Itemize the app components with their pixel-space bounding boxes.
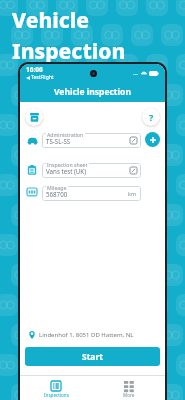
staticText: km xyxy=(128,190,137,197)
staticText: TS-SL-SS xyxy=(46,137,130,145)
button[interactable]: Add xyxy=(145,132,160,147)
button[interactable]: Vans test (UK) xyxy=(42,161,141,178)
staticText: Lindenhof 1, 8051 DD Hattem, NL xyxy=(39,331,134,339)
staticText: Vans test (UK) xyxy=(46,167,130,175)
staticText: TestFlight xyxy=(31,74,54,81)
button[interactable]: Archive xyxy=(25,108,43,126)
button[interactable]: Start xyxy=(25,347,160,366)
staticText: More xyxy=(123,392,135,398)
button[interactable]: 568700 xyxy=(42,184,141,201)
button[interactable]: More xyxy=(92,376,165,400)
staticText: 16:06 xyxy=(26,65,43,74)
button[interactable]: Help xyxy=(142,108,160,126)
staticText: ? xyxy=(149,111,154,123)
staticText: Vehicle inspection xyxy=(54,86,131,98)
staticText: Administration xyxy=(47,131,84,138)
staticText: Mileage xyxy=(47,184,67,191)
staticText: ... xyxy=(133,69,139,77)
staticText: Inspections xyxy=(44,392,69,398)
staticText: Vehicle xyxy=(12,6,90,35)
staticText: Start xyxy=(82,351,103,363)
staticText: 568700 xyxy=(46,190,128,198)
staticText: Inspection sheet xyxy=(47,161,88,168)
button[interactable]: Lindenhof 1, 8051 DD Hattem, NL xyxy=(28,331,157,339)
button[interactable]: Inspections xyxy=(20,376,92,400)
staticText: Inspection xyxy=(12,37,126,66)
button[interactable]: TS-SL-SS xyxy=(42,131,141,148)
